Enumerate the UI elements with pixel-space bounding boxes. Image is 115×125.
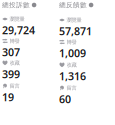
button[interactable]: 轉發 — [2, 38, 55, 59]
staticText: 總投訴數 — [2, 1, 30, 9]
staticText: 留言 — [10, 83, 20, 89]
button[interactable]: 瀏覽量 — [2, 16, 55, 37]
staticText: 收藏 — [10, 60, 20, 66]
button[interactable]: 轉發 — [59, 39, 112, 60]
staticText: 19 — [2, 90, 14, 104]
staticText: 收藏 — [67, 62, 77, 68]
button[interactable]: 收藏 — [59, 62, 112, 83]
staticText: 瀏覽量 — [10, 16, 25, 22]
button[interactable]: 總投訴數 — more info — [2, 1, 55, 9]
staticText: 60 — [59, 92, 71, 106]
button[interactable]: 留言 — [59, 85, 112, 106]
staticText: 307 — [2, 45, 20, 59]
staticText: 留言 — [67, 85, 77, 91]
button[interactable]: 瀏覽量 — [59, 17, 112, 38]
staticText: 總反饋數 — [59, 1, 87, 9]
button[interactable]: 收藏 — [2, 60, 55, 81]
staticText: 1,009 — [59, 46, 86, 60]
button[interactable]: 留言 — [2, 83, 55, 104]
button[interactable]: 總反饋數 — more info — [59, 1, 112, 9]
staticText: 399 — [2, 67, 20, 81]
staticText: 1,316 — [59, 69, 86, 83]
staticText: 瀏覽量 — [67, 17, 82, 23]
staticText: 轉發 — [67, 39, 77, 45]
staticText: 29,724 — [2, 23, 35, 37]
staticText: 57,871 — [59, 24, 92, 38]
staticText: 轉發 — [10, 38, 20, 44]
